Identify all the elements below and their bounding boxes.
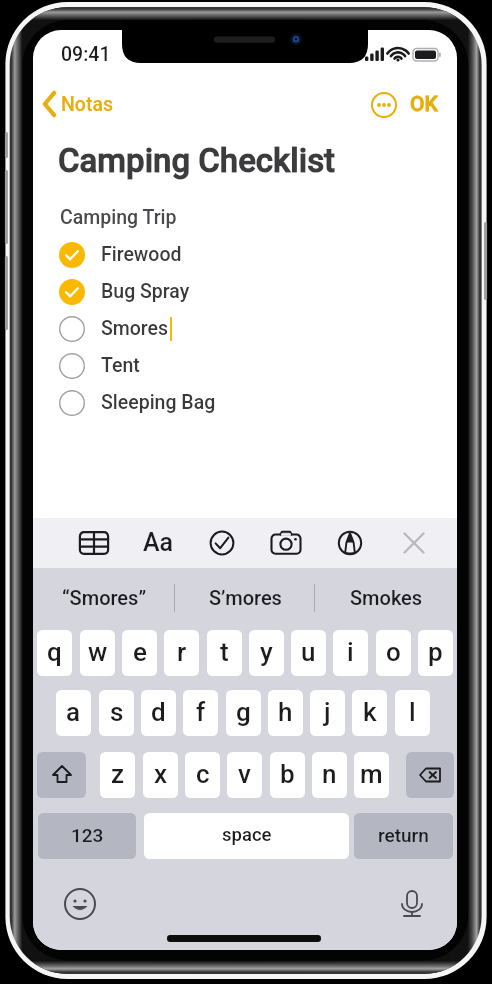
staticText: l <box>409 697 416 727</box>
staticText: v <box>238 759 251 789</box>
staticText: Aa <box>143 528 174 557</box>
button[interactable]: Backspace <box>406 752 454 798</box>
button[interactable]: OK <box>402 86 446 123</box>
staticText: m <box>360 759 383 789</box>
staticText: Smokes <box>350 586 423 609</box>
staticText: w <box>88 637 108 667</box>
button[interactable]: Smores <box>33 310 457 347</box>
button[interactable]: Camera <box>264 518 308 568</box>
button[interactable]: Table <box>72 518 116 568</box>
staticText: z <box>111 759 125 789</box>
staticText: i <box>347 637 354 667</box>
staticText: Tent <box>101 354 140 377</box>
staticText: Camping Trip <box>60 206 177 229</box>
staticText: Firewood <box>101 243 182 266</box>
staticText: Notas <box>61 93 113 116</box>
staticText: Sleeping Bag <box>101 391 216 414</box>
button[interactable]: f <box>183 690 218 736</box>
staticText: “Smores” <box>62 586 147 609</box>
button[interactable]: a <box>56 690 91 736</box>
button[interactable]: Tent <box>33 347 457 384</box>
staticText: t <box>220 637 229 667</box>
button[interactable]: More options <box>366 87 402 123</box>
button[interactable]: w <box>80 630 115 676</box>
staticText: Smores <box>101 317 169 340</box>
button[interactable]: v <box>227 752 262 798</box>
staticText: e <box>133 637 147 667</box>
button[interactable]: n <box>312 752 347 798</box>
staticText: s <box>110 697 124 727</box>
button[interactable]: x <box>143 752 178 798</box>
button[interactable]: Smokes <box>316 568 457 628</box>
button[interactable]: s <box>99 690 134 736</box>
button[interactable]: i <box>333 630 368 676</box>
button[interactable]: y <box>249 630 284 676</box>
button[interactable]: p <box>418 630 453 676</box>
staticText: q <box>47 637 62 667</box>
staticText: Camping Checklist <box>58 141 336 180</box>
staticText: S’mores <box>209 586 282 609</box>
staticText: g <box>236 697 251 727</box>
button[interactable]: o <box>376 630 411 676</box>
button[interactable]: k <box>352 690 387 736</box>
staticText: Bug Spray <box>101 280 190 303</box>
staticText: h <box>278 697 293 727</box>
staticText: p <box>428 637 443 667</box>
staticText: space <box>222 824 272 846</box>
staticText: b <box>280 759 295 789</box>
staticText: c <box>196 759 210 789</box>
button[interactable]: return <box>354 813 453 859</box>
button[interactable]: S’mores <box>175 568 316 628</box>
staticText: o <box>386 637 401 667</box>
button[interactable]: Firewood <box>33 236 457 273</box>
button[interactable]: Aa <box>136 518 180 568</box>
staticText: j <box>324 697 331 727</box>
button[interactable]: g <box>226 690 261 736</box>
button[interactable]: 123 <box>38 813 136 859</box>
button[interactable]: e <box>122 630 157 676</box>
staticText: k <box>363 697 377 727</box>
button[interactable]: h <box>268 690 303 736</box>
button[interactable]: Checklist <box>200 518 244 568</box>
button[interactable]: t <box>207 630 242 676</box>
button[interactable]: d <box>141 690 176 736</box>
button[interactable]: m <box>354 752 389 798</box>
button[interactable]: “Smores” <box>33 568 175 628</box>
staticText: a <box>66 697 81 727</box>
staticText: r <box>177 637 187 667</box>
staticText: n <box>322 759 337 789</box>
button[interactable]: l <box>395 690 430 736</box>
button[interactable]: Markup <box>328 518 372 568</box>
button[interactable]: u <box>291 630 326 676</box>
staticText: 09:41 <box>61 43 111 66</box>
staticText: f <box>196 697 206 727</box>
button[interactable]: q <box>37 630 72 676</box>
button[interactable]: b <box>270 752 305 798</box>
button[interactable]: Shift <box>37 752 86 798</box>
staticText: u <box>301 637 316 667</box>
staticText: 123 <box>71 824 104 846</box>
button[interactable]: Emoji <box>62 886 98 922</box>
staticText: OK <box>410 92 438 117</box>
button[interactable]: r <box>164 630 199 676</box>
staticText: y <box>260 637 273 667</box>
button[interactable]: Close <box>392 518 436 568</box>
button[interactable]: z <box>100 752 135 798</box>
button[interactable]: c <box>185 752 220 798</box>
button[interactable]: Dictate <box>394 886 430 922</box>
button[interactable]: space <box>144 813 349 859</box>
staticText: return <box>378 824 429 846</box>
button[interactable]: Sleeping Bag <box>33 384 457 421</box>
button[interactable]: j <box>310 690 345 736</box>
staticText: d <box>151 697 166 727</box>
button[interactable]: Bug Spray <box>33 273 457 310</box>
button[interactable]: Notas <box>38 87 117 121</box>
staticText: x <box>154 759 168 789</box>
